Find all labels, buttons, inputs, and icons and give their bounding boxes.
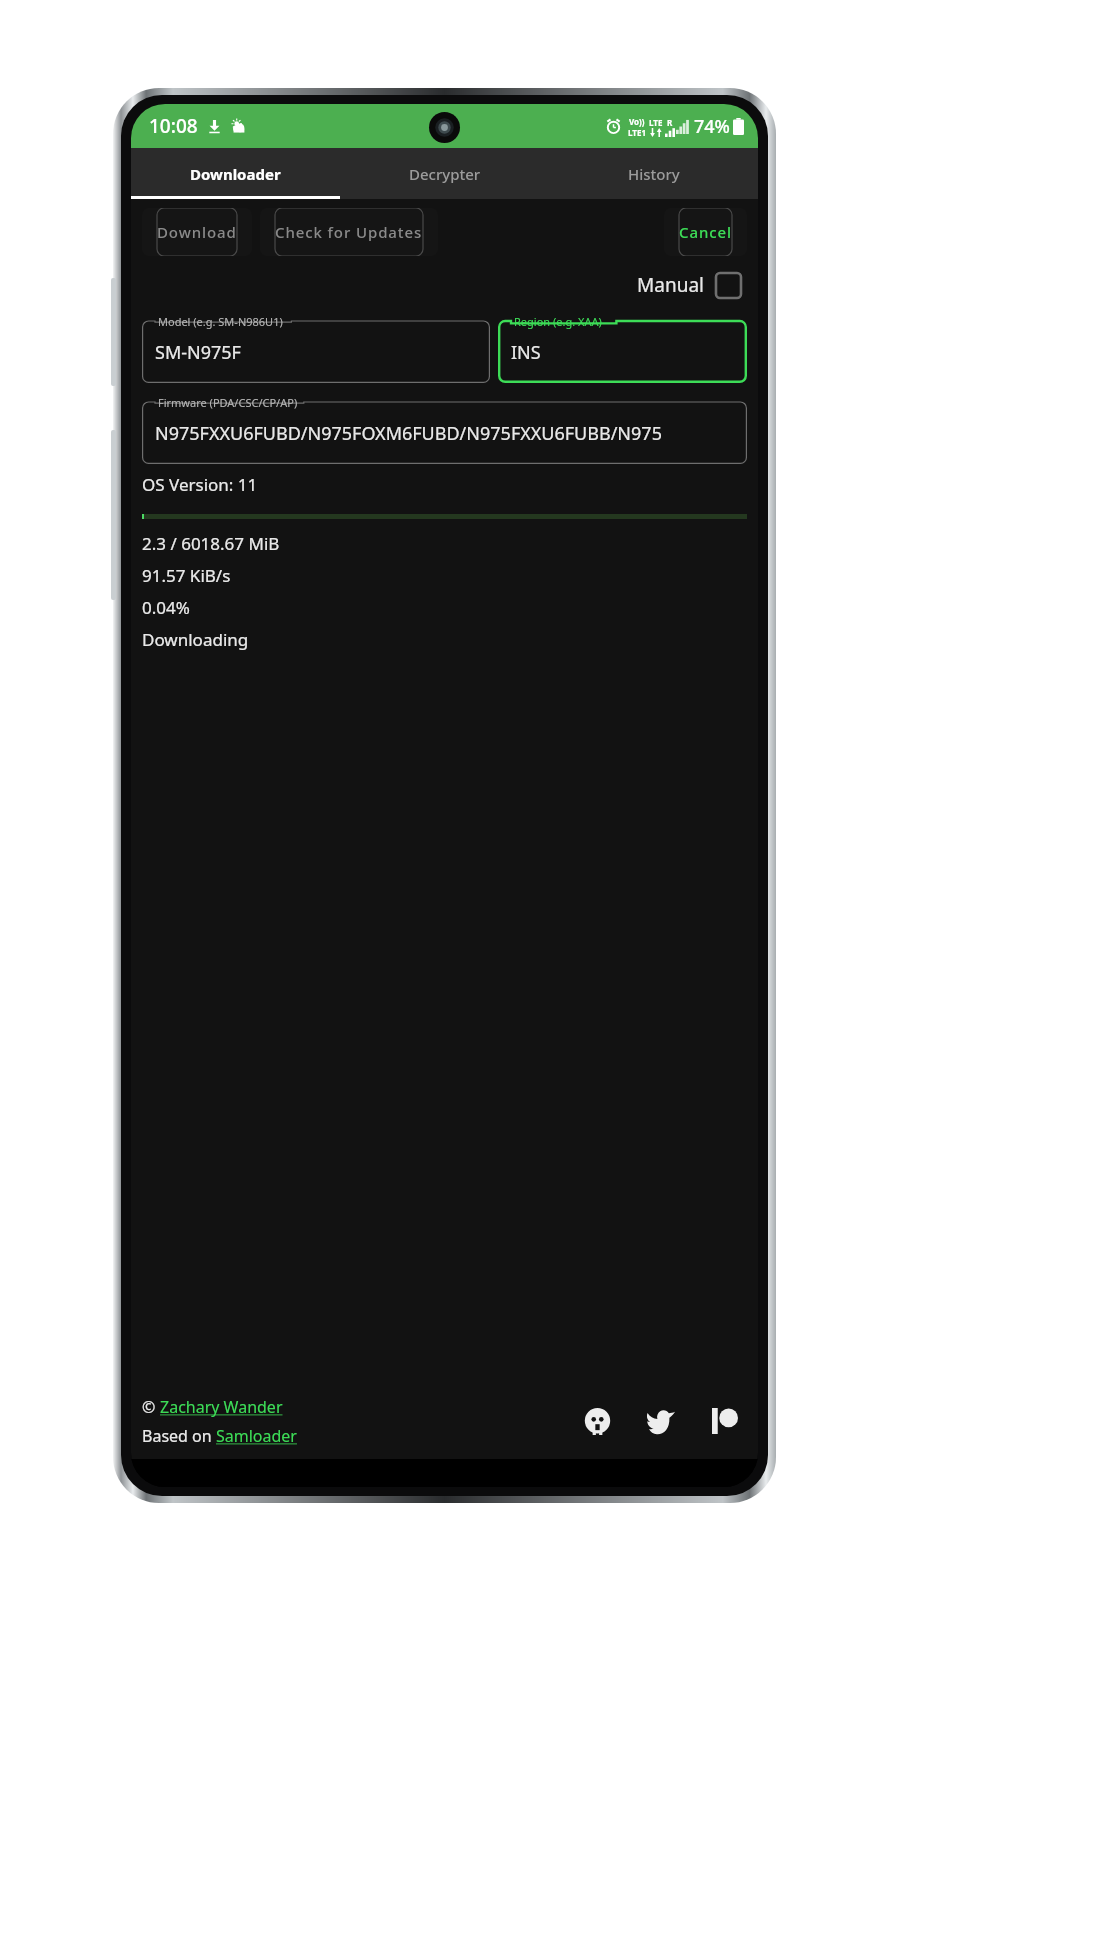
staticText: Region (e.g. XAA) <box>514 314 602 329</box>
staticText: 91.57 KiB/s <box>142 564 231 587</box>
staticText: LTE1 <box>628 127 646 138</box>
staticText: Check for Updates <box>275 222 423 242</box>
button[interactable]: © <box>142 1396 283 1418</box>
staticText: 74% <box>694 114 730 139</box>
staticText: OS Version: 11 <box>142 473 258 496</box>
staticText: Manual <box>637 272 704 298</box>
button[interactable]: History <box>549 148 758 199</box>
staticText: Cancel <box>679 222 732 242</box>
staticText: © <box>142 1396 160 1418</box>
button[interactable]: Manual <box>633 268 745 302</box>
staticText: Decrypter <box>409 164 481 184</box>
staticText: Downloader <box>190 164 281 184</box>
staticText: Model (e.g. SM-N986U1) <box>158 314 283 329</box>
staticText: Samloader <box>216 1425 297 1447</box>
staticText: SM-N975F <box>155 340 241 365</box>
staticText: N975FXXU6FUBD/N975FOXM6FUBD/N975FXXU6FUB… <box>155 421 662 446</box>
button[interactable]: Twitter <box>639 1399 683 1443</box>
button[interactable]: Patreon <box>703 1399 747 1443</box>
staticText: Based on <box>142 1425 216 1447</box>
staticText: 0.04% <box>142 596 190 619</box>
staticText: 2.3 / 6018.67 MiB <box>142 532 280 555</box>
button[interactable]: Decrypter <box>340 148 549 199</box>
button[interactable]: Model (e.g. SM-N986U1) <box>142 313 490 383</box>
staticText: Zachary Wander <box>160 1396 283 1418</box>
button[interactable]: Check for Updates <box>260 208 438 256</box>
staticText: INS <box>511 340 541 365</box>
button[interactable]: Download <box>142 208 252 256</box>
staticText: Download <box>157 222 237 242</box>
button[interactable]: Downloader <box>131 148 340 199</box>
button[interactable]: GitHub <box>575 1399 619 1443</box>
button[interactable]: Samloader <box>216 1425 297 1447</box>
staticText: History <box>628 164 680 184</box>
staticText: Downloading <box>142 628 249 651</box>
staticText: R <box>667 117 673 128</box>
button[interactable]: Cancel <box>664 208 747 256</box>
staticText: LTE <box>649 117 663 128</box>
button[interactable]: Region (e.g. XAA) <box>498 313 747 383</box>
staticText: Vo)) <box>629 116 645 127</box>
button[interactable]: Firmware (PDA/CSC/CP/AP) <box>142 394 747 464</box>
staticText: 10:08 <box>149 113 198 139</box>
staticText: Firmware (PDA/CSC/CP/AP) <box>158 395 298 410</box>
